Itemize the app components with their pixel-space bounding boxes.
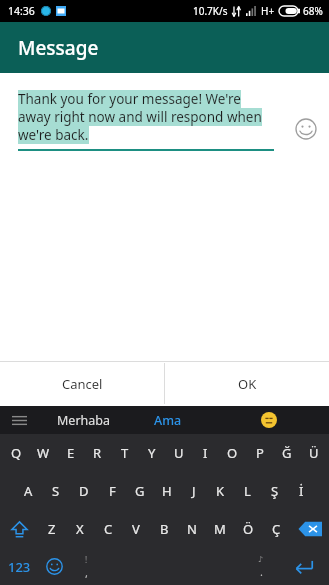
staticText: ♪ <box>258 555 264 564</box>
staticText: Q <box>11 444 22 462</box>
staticText: C <box>104 520 113 538</box>
button[interactable]: Z <box>38 510 66 548</box>
button[interactable]: G <box>126 472 153 510</box>
staticText: 10.7K/s <box>193 4 228 18</box>
button[interactable]: Ö <box>234 510 262 548</box>
staticText: J <box>192 482 196 500</box>
button[interactable]: Ama <box>128 406 208 434</box>
staticText: X <box>76 520 84 538</box>
button[interactable]: J <box>180 472 207 510</box>
button[interactable]: Ç <box>262 510 290 548</box>
button[interactable]: Emoji keyboard <box>38 548 71 585</box>
staticText: İ <box>299 482 304 500</box>
staticText: Ğ <box>282 444 292 462</box>
staticText: Ş <box>271 482 279 500</box>
button[interactable]: I <box>192 434 219 472</box>
staticText: F <box>109 482 116 500</box>
staticText: W <box>37 444 50 462</box>
button[interactable]: ♪ <box>246 548 276 585</box>
staticText: OK <box>238 375 257 393</box>
button[interactable]: L <box>234 472 261 510</box>
button[interactable]: M <box>206 510 234 548</box>
button[interactable]: D <box>70 472 98 510</box>
staticText: Merhaba <box>57 412 110 429</box>
button[interactable]: P <box>246 434 273 472</box>
staticText: K <box>216 482 225 500</box>
staticText: ! <box>85 554 88 565</box>
button[interactable]: N <box>178 510 206 548</box>
staticText: A <box>24 482 33 500</box>
staticText: S <box>52 482 60 500</box>
button[interactable]: OK <box>165 361 329 406</box>
staticText: away right now and will respond when <box>18 108 262 126</box>
staticText: B <box>160 520 169 538</box>
button[interactable]: H <box>153 472 180 510</box>
button[interactable]: Y <box>138 434 165 472</box>
staticText: T <box>121 444 129 462</box>
button[interactable]: Ü <box>300 434 327 472</box>
button[interactable]: R <box>84 434 111 472</box>
staticText: H+ <box>261 4 275 18</box>
staticText: H <box>162 482 172 500</box>
staticText: Thank you for your message! We're <box>18 90 241 108</box>
staticText: Ö <box>243 520 254 538</box>
button[interactable]: Shift <box>0 510 38 548</box>
staticText: , <box>85 565 88 580</box>
button[interactable]: U <box>165 434 192 472</box>
staticText: G <box>135 482 145 500</box>
staticText: M <box>214 520 226 538</box>
button[interactable]: Backspace <box>290 510 329 548</box>
button[interactable]: O <box>219 434 246 472</box>
button[interactable]: Insert emoji <box>282 90 329 148</box>
button[interactable]: Ğ <box>273 434 300 472</box>
staticText: Z <box>48 520 56 538</box>
staticText: U <box>174 444 184 462</box>
button[interactable]: V <box>122 510 150 548</box>
button[interactable]: E <box>57 434 84 472</box>
button[interactable]: C <box>94 510 122 548</box>
staticText: Ç <box>272 520 281 538</box>
button[interactable]: İ <box>288 472 315 510</box>
button[interactable]: Emoji suggestion <box>208 406 329 434</box>
staticText: Ama <box>154 412 182 429</box>
staticText: P <box>256 444 264 462</box>
button[interactable]: K <box>207 472 234 510</box>
staticText: Ü <box>309 444 319 462</box>
staticText: O <box>227 444 238 462</box>
button[interactable]: Ş <box>261 472 288 510</box>
button[interactable]: S <box>42 472 70 510</box>
staticText: L <box>244 482 251 500</box>
staticText: R <box>93 444 102 462</box>
button[interactable]: 123 <box>0 548 38 585</box>
staticText: 123 <box>8 558 31 576</box>
button[interactable]: F <box>98 472 126 510</box>
staticText: Cancel <box>62 375 103 393</box>
staticText: V <box>132 520 140 538</box>
button[interactable]: Merhaba <box>38 406 128 434</box>
staticText: 14:36 <box>8 4 35 18</box>
button[interactable]: Q <box>2 434 30 472</box>
button[interactable]: A <box>14 472 42 510</box>
button[interactable]: T <box>111 434 138 472</box>
staticText: I <box>203 444 208 462</box>
staticText: 68% <box>303 4 323 18</box>
staticText: . <box>260 564 263 579</box>
staticText: D <box>79 482 89 500</box>
button[interactable]: X <box>66 510 94 548</box>
button[interactable]: Enter <box>276 548 329 585</box>
staticText: we're back. <box>18 126 89 144</box>
button[interactable]: W <box>30 434 57 472</box>
button[interactable]: ! <box>71 548 101 585</box>
staticText: E <box>67 444 75 462</box>
button[interactable]: Keyboard menu <box>0 406 38 434</box>
button[interactable]: Cancel <box>0 361 164 406</box>
staticText: Message <box>18 35 99 61</box>
staticText: N <box>187 520 197 538</box>
staticText: Y <box>148 444 156 462</box>
button[interactable]: B <box>150 510 178 548</box>
